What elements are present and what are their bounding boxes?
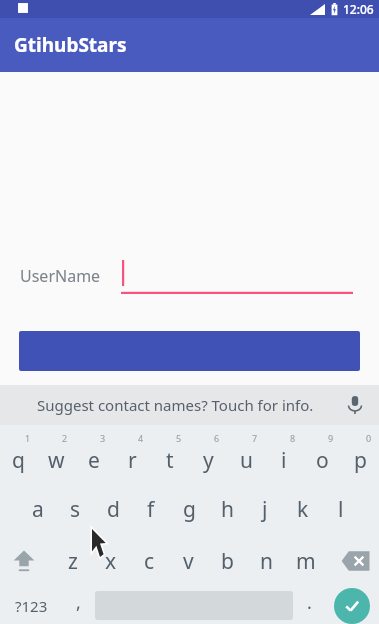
staticText: c [144,547,155,576]
staticText: 0 [366,432,372,444]
staticText: d [107,495,120,524]
button[interactable]: v [169,537,208,585]
staticText: e [88,446,100,475]
staticText: 2 [62,432,68,444]
staticText: x [105,547,117,576]
staticText: p [354,446,367,475]
button[interactable]: x [92,537,130,585]
button[interactable]: c [130,537,169,585]
button[interactable]: 1 [0,431,37,479]
button[interactable]: 3 [75,431,113,479]
staticText: ?123 [15,596,48,616]
button[interactable]: ?123 [0,587,62,624]
button[interactable]: 4 [113,431,151,479]
button[interactable]: Backspace [332,537,379,585]
button[interactable]: Suggest contact names? Touch for info. [0,385,379,425]
staticText: i [281,446,287,475]
staticText: v [183,547,194,576]
staticText: g [183,495,196,524]
staticText: t [166,446,174,475]
staticText: 3 [100,432,106,444]
staticText: k [297,495,309,524]
button[interactable] [121,260,353,294]
button[interactable]: 9 [303,431,341,479]
button[interactable]: Enter [334,588,370,624]
staticText: 1 [25,432,31,444]
staticText: z [68,547,78,576]
button[interactable]: 5 [151,431,189,479]
button[interactable]: 6 [189,431,227,479]
button[interactable]: g [170,485,208,533]
staticText: 12:06 [343,1,374,17]
staticText: 6 [214,432,220,444]
button[interactable]: b [208,537,247,585]
button[interactable]: Shift [0,537,47,585]
button[interactable]: , [62,587,95,624]
button[interactable]: 8 [265,431,303,479]
button[interactable]: 7 [227,431,265,479]
staticText: n [260,547,273,576]
staticText: 5 [176,432,182,444]
staticText: m [296,547,316,576]
staticText: j [262,495,268,524]
staticText: 7 [252,432,258,444]
button[interactable]: z [54,537,92,585]
button[interactable]: m [286,537,325,585]
staticText: . [307,590,312,615]
staticText: s [70,495,81,524]
staticText: l [338,495,344,524]
button[interactable]: . [293,587,325,624]
staticText: q [12,446,25,475]
staticText: GtihubStars [14,32,127,58]
button[interactable]: f [132,485,170,533]
staticText: Suggest contact names? Touch for info. [37,395,314,415]
staticText: h [221,495,234,524]
button[interactable]: 0 [341,431,379,479]
staticText: o [316,446,329,475]
staticText: b [221,547,234,576]
button[interactable]: s [56,485,94,533]
staticText: , [76,590,81,615]
staticText: 4 [138,432,144,444]
staticText: f [147,495,155,524]
staticText: 9 [328,432,334,444]
button[interactable]: d [94,485,132,533]
staticText: u [240,446,253,475]
button[interactable]: j [246,485,284,533]
staticText: y [203,446,214,475]
staticText: w [48,446,65,475]
button[interactable]: k [284,485,322,533]
other: Voice input [345,395,365,415]
button[interactable]: h [208,485,246,533]
staticText: r [128,446,137,475]
staticText: a [32,495,44,524]
staticText: UserName [20,265,101,287]
staticText: 8 [290,432,296,444]
button[interactable]: n [247,537,286,585]
button[interactable]: 2 [37,431,75,479]
button[interactable]: l [322,485,360,533]
button[interactable]: a [19,485,56,533]
